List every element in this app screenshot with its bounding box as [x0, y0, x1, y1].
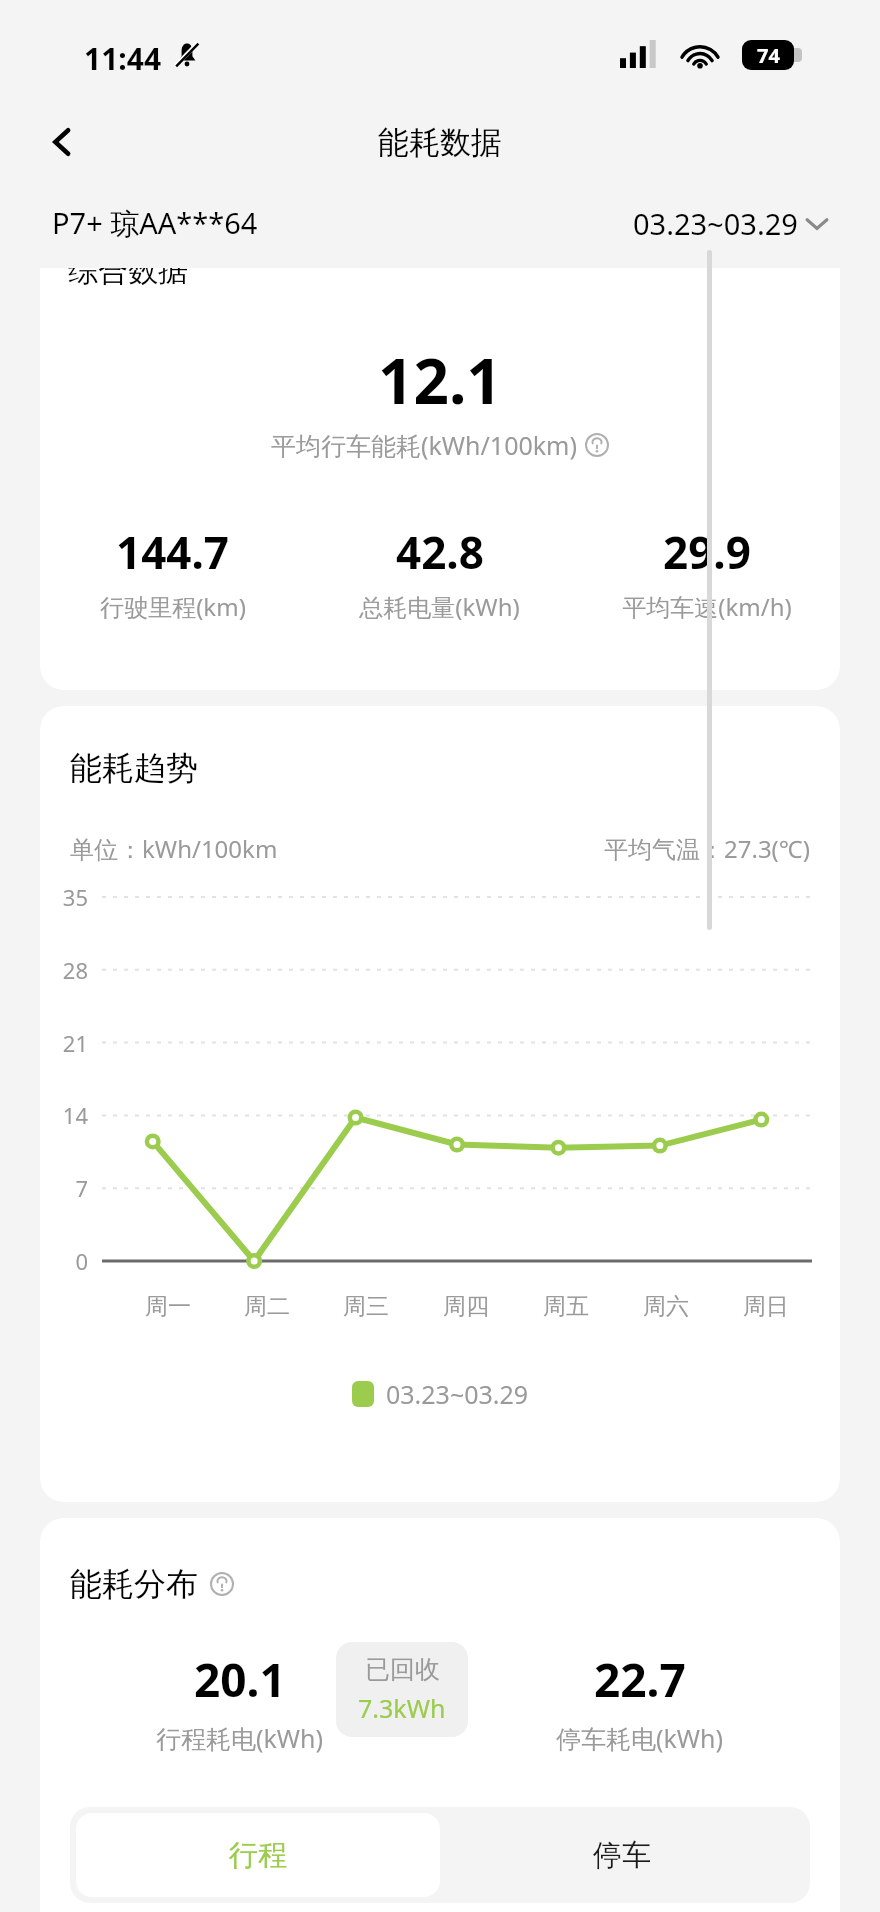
- staticText: 单位：kWh/100km: [70, 832, 278, 865]
- staticText: 能耗分布: [70, 1564, 198, 1604]
- staticText: 行程: [229, 1837, 287, 1874]
- staticText: 停车: [593, 1837, 651, 1874]
- staticText: 平均行车能耗(kWh/100km): [271, 428, 577, 462]
- staticText: 周六: [643, 1292, 689, 1321]
- button[interactable]: 03.23~03.29: [633, 204, 828, 243]
- button[interactable]: 能耗趋势: [40, 706, 840, 1502]
- staticText: P7+ 琼AA***64: [52, 203, 258, 243]
- staticText: 行程耗电(kWh): [156, 1721, 324, 1755]
- staticText: 21: [40, 1028, 88, 1058]
- staticText: 42.8: [396, 522, 484, 582]
- button[interactable]: Back: [30, 110, 94, 174]
- staticText: 28: [40, 955, 88, 985]
- button[interactable]: 行程: [76, 1813, 440, 1897]
- staticText: 7.3kWh: [358, 1691, 446, 1725]
- staticText: 29.9: [663, 522, 751, 582]
- staticText: 周四: [443, 1292, 489, 1321]
- staticText: 35: [40, 882, 88, 912]
- staticText: 7: [40, 1173, 88, 1203]
- staticText: 12.1: [378, 338, 502, 422]
- staticText: 能耗趋势: [70, 748, 198, 788]
- staticText: 行驶里程(km): [100, 590, 246, 623]
- staticText: 能耗数据: [378, 123, 502, 162]
- staticText: 03.23~03.29: [633, 204, 798, 243]
- staticText: 周一: [145, 1292, 191, 1321]
- staticText: 14: [40, 1100, 88, 1130]
- staticText: 平均气温：27.3(℃): [604, 832, 810, 865]
- staticText: 总耗电量(kWh): [359, 590, 520, 623]
- staticText: 周三: [343, 1292, 389, 1321]
- staticText: 周二: [244, 1292, 290, 1321]
- staticText: 0: [40, 1246, 88, 1276]
- staticText: 已回收: [365, 1654, 440, 1685]
- staticText: 综合数据: [68, 268, 188, 290]
- staticText: 20.1: [194, 1648, 286, 1711]
- button[interactable]: 综合数据: [40, 268, 840, 690]
- staticText: 停车耗电(kWh): [556, 1721, 724, 1755]
- staticText: 平均车速(km/h): [622, 590, 792, 623]
- staticText: 144.7: [116, 522, 230, 582]
- button[interactable]: 能耗分布: [40, 1518, 840, 1912]
- staticText: 03.23~03.29: [386, 1377, 529, 1411]
- staticText: 74: [757, 42, 780, 69]
- staticText: 22.7: [594, 1648, 686, 1711]
- staticText: 周五: [543, 1292, 589, 1321]
- button[interactable]: 停车: [440, 1813, 804, 1897]
- staticText: 周日: [743, 1292, 789, 1321]
- staticText: 11:44: [84, 38, 162, 79]
